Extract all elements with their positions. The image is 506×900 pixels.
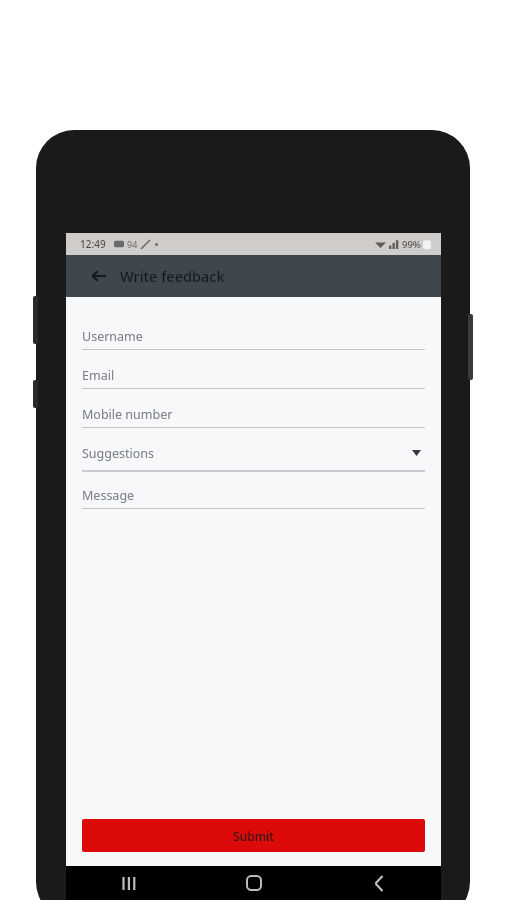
button[interactable]: Username <box>82 323 425 350</box>
staticText: Write feedback <box>120 266 225 286</box>
staticText: Username <box>82 328 143 345</box>
staticText: Email <box>82 367 115 384</box>
button[interactable]: Home <box>191 866 316 900</box>
button[interactable]: Message <box>82 482 425 509</box>
button[interactable]: Recent apps <box>66 866 191 900</box>
staticText: Message <box>82 487 135 504</box>
button[interactable]: Email <box>82 362 425 389</box>
button[interactable]: Suggestions <box>82 436 425 472</box>
staticText: 99% <box>402 238 421 251</box>
staticText: Suggestions <box>82 445 155 462</box>
staticText: Submit <box>233 828 274 844</box>
staticText: 94 <box>127 238 138 250</box>
button[interactable]: Back <box>316 866 441 900</box>
button[interactable]: Back <box>86 263 112 289</box>
button[interactable]: Mobile number <box>82 401 425 428</box>
staticText: Mobile number <box>82 406 173 423</box>
staticText: 12:49 <box>80 237 106 251</box>
button[interactable]: Submit <box>82 819 425 852</box>
